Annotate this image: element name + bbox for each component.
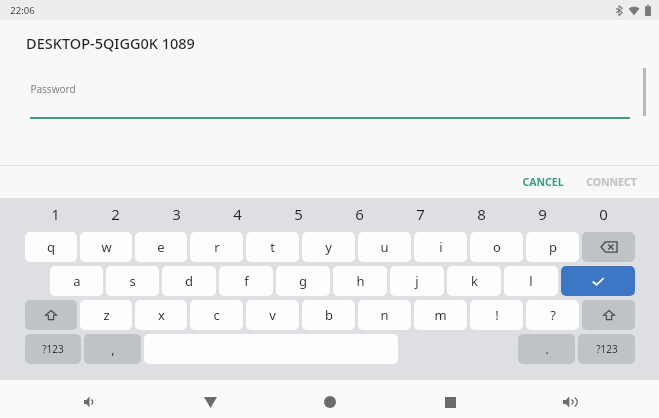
staticText: CANCEL (522, 175, 564, 189)
staticText: Password (30, 82, 76, 96)
staticText: p (549, 238, 557, 256)
button[interactable]: Enter (561, 266, 635, 296)
button[interactable]: h (333, 266, 387, 296)
staticText: o (493, 238, 501, 256)
button[interactable]: q (25, 232, 77, 262)
staticText: j (415, 272, 419, 290)
button[interactable]: v (246, 300, 299, 330)
button[interactable]: Back (193, 386, 227, 418)
button[interactable]: 8 (451, 198, 512, 230)
button[interactable]: . (518, 334, 575, 364)
button[interactable]: ?123 (25, 334, 81, 364)
staticText: 1 (51, 204, 60, 224)
button[interactable]: , (84, 334, 141, 364)
staticText: k (471, 272, 478, 290)
staticText: 0 (599, 204, 608, 224)
button[interactable]: r (190, 232, 243, 262)
button[interactable]: 3 (146, 198, 207, 230)
button[interactable]: Volume up (553, 386, 587, 418)
staticText: e (157, 238, 165, 256)
staticText: 9 (538, 204, 547, 224)
staticText: ?123 (596, 342, 618, 356)
staticText: w (101, 238, 112, 256)
staticText: DESKTOP-5QIGG0K 1089 (26, 33, 195, 53)
staticText: ?123 (42, 342, 64, 356)
staticText: CONNECT (586, 175, 637, 189)
button[interactable]: 5 (268, 198, 329, 230)
button[interactable]: ?123 (578, 334, 635, 364)
staticText: u (380, 238, 389, 256)
button[interactable]: 0 (573, 198, 634, 230)
button[interactable]: b (302, 300, 355, 330)
staticText: q (47, 238, 55, 256)
staticText: y (325, 238, 332, 256)
staticText: 22:06 (10, 4, 35, 17)
staticText: b (325, 306, 333, 324)
button[interactable]: z (80, 300, 132, 330)
staticText: i (439, 238, 443, 256)
button[interactable]: i (414, 232, 467, 262)
button[interactable]: 6 (329, 198, 390, 230)
staticText: v (269, 306, 276, 324)
button[interactable]: n (358, 300, 411, 330)
staticText: n (380, 306, 389, 324)
button[interactable]: u (358, 232, 411, 262)
staticText: x (158, 306, 165, 324)
button[interactable]: 9 (512, 198, 573, 230)
button[interactable]: o (470, 232, 523, 262)
staticText: t (270, 238, 275, 256)
button[interactable]: k (447, 266, 501, 296)
button[interactable]: s (106, 266, 159, 296)
button[interactable]: Shift (25, 300, 77, 330)
staticText: l (529, 272, 533, 290)
button[interactable]: ! (470, 300, 523, 330)
staticText: , (111, 340, 115, 358)
button[interactable]: m (414, 300, 467, 330)
button[interactable]: 7 (390, 198, 451, 230)
staticText: r (214, 238, 220, 256)
button[interactable]: 4 (207, 198, 268, 230)
button[interactable]: Shift (582, 300, 635, 330)
staticText: a (73, 272, 81, 290)
button[interactable]: Backspace (582, 232, 635, 262)
button[interactable]: x (135, 300, 187, 330)
staticText: s (129, 272, 136, 290)
staticText: m (434, 306, 447, 324)
staticText: 7 (416, 204, 425, 224)
staticText: 8 (477, 204, 486, 224)
staticText: ! (495, 306, 499, 324)
staticText: f (244, 272, 249, 290)
staticText: c (213, 306, 220, 324)
button[interactable]: l (504, 266, 558, 296)
button[interactable]: 2 (85, 198, 146, 230)
button[interactable]: p (526, 232, 579, 262)
button[interactable]: e (135, 232, 187, 262)
staticText: 5 (294, 204, 303, 224)
button[interactable]: g (276, 266, 330, 296)
button[interactable]: t (246, 232, 299, 262)
button[interactable]: c (190, 300, 243, 330)
button[interactable]: CANCEL (514, 169, 572, 195)
button[interactable]: Volume down (73, 386, 107, 418)
button[interactable]: Home (313, 386, 347, 418)
button[interactable]: y (302, 232, 355, 262)
staticText: d (185, 272, 193, 290)
staticText: . (545, 340, 549, 358)
staticText: g (299, 272, 307, 290)
button[interactable]: Recents (433, 386, 467, 418)
button[interactable]: j (390, 266, 444, 296)
staticText: h (356, 272, 365, 290)
staticText: 6 (355, 204, 364, 224)
button[interactable]: 1 (25, 198, 85, 230)
button[interactable]: ? (526, 300, 579, 330)
button[interactable]: a (50, 266, 103, 296)
button[interactable]: w (80, 232, 132, 262)
staticText: ? (550, 306, 556, 324)
button[interactable]: CONNECT (578, 169, 645, 195)
staticText: 4 (233, 204, 242, 224)
staticText: z (103, 306, 110, 324)
button[interactable]: d (162, 266, 216, 296)
button[interactable]: f (219, 266, 273, 296)
staticText: 2 (111, 204, 120, 224)
